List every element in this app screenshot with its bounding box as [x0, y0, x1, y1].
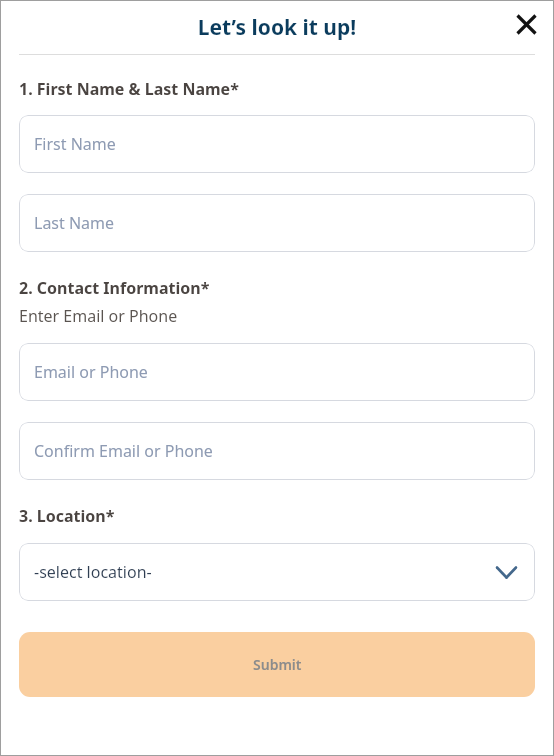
staticText: 2. Contact Information*: [19, 277, 210, 299]
button[interactable]: Close: [506, 4, 546, 44]
staticText: Enter Email or Phone: [19, 305, 178, 327]
button[interactable]: Last Name: [19, 194, 535, 252]
button[interactable]: Email or Phone: [19, 343, 535, 401]
button[interactable]: Confirm Email or Phone: [19, 422, 535, 480]
staticText: Submit: [253, 655, 302, 674]
staticText: 1. First Name & Last Name*: [19, 78, 239, 100]
button[interactable]: Submit: [19, 632, 535, 697]
button[interactable]: -select location-: [19, 543, 535, 601]
staticText: Confirm Email or Phone: [34, 440, 213, 462]
staticText: 3. Location*: [19, 505, 115, 527]
button[interactable]: First Name: [19, 115, 535, 173]
staticText: Email or Phone: [34, 361, 148, 383]
staticText: Last Name: [34, 212, 115, 234]
staticText: First Name: [34, 133, 116, 155]
staticText: -select location-: [34, 561, 496, 583]
staticText: Let’s look it up!: [0, 13, 554, 42]
